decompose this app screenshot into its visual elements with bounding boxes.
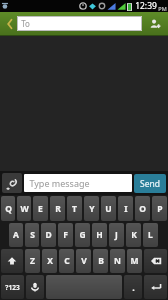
button[interactable]: D xyxy=(41,223,56,247)
button[interactable]: Y xyxy=(84,196,99,221)
button[interactable]: Z xyxy=(25,249,40,273)
button[interactable]: Q xyxy=(1,196,15,221)
button[interactable]: To xyxy=(17,16,142,31)
button[interactable]: S xyxy=(25,223,39,247)
button[interactable]: L xyxy=(143,223,158,247)
button[interactable]: Add recipient xyxy=(145,13,165,34)
button[interactable]: C xyxy=(59,249,74,273)
button[interactable]: X xyxy=(42,249,57,273)
staticText: I xyxy=(124,203,128,215)
button[interactable]: G xyxy=(75,223,90,247)
button[interactable]: M xyxy=(127,249,142,273)
staticText: F xyxy=(63,229,68,241)
button[interactable]: Voice input xyxy=(26,275,44,299)
staticText: W xyxy=(20,203,29,215)
button[interactable]: . xyxy=(124,275,142,299)
staticText: P xyxy=(157,203,163,215)
staticText: S xyxy=(30,229,35,241)
staticText: E xyxy=(38,203,43,215)
staticText: Type message xyxy=(29,177,90,189)
staticText: G xyxy=(79,229,86,241)
button[interactable]: W xyxy=(17,196,31,221)
staticText: O xyxy=(139,203,146,215)
button[interactable]: Back xyxy=(3,13,17,34)
staticText: Z xyxy=(30,255,35,267)
staticText: K xyxy=(131,229,137,241)
button[interactable]: B xyxy=(93,249,108,273)
button[interactable]: Send xyxy=(134,174,166,193)
button[interactable]: T xyxy=(67,196,82,221)
staticText: X xyxy=(47,255,53,267)
staticText: To xyxy=(21,18,30,29)
staticText: R xyxy=(55,203,61,215)
staticText: Q xyxy=(5,203,12,215)
staticText: PM xyxy=(158,5,167,12)
button[interactable]: P xyxy=(152,196,167,221)
staticText: ?123 xyxy=(5,283,20,292)
staticText: M xyxy=(130,255,139,267)
staticText: Send xyxy=(140,178,160,190)
staticText: Y xyxy=(89,203,95,215)
button[interactable]: Attach xyxy=(2,173,22,193)
staticText: N xyxy=(114,255,121,267)
button[interactable]: Type message xyxy=(24,174,132,192)
button[interactable]: Enter xyxy=(144,275,167,299)
button[interactable]: E xyxy=(33,196,48,221)
button[interactable]: A xyxy=(9,223,23,247)
staticText: V xyxy=(81,255,87,267)
staticText: C xyxy=(64,255,70,267)
staticText: T xyxy=(72,203,77,215)
button[interactable]: R xyxy=(50,196,65,221)
button[interactable]: N xyxy=(110,249,125,273)
staticText: . xyxy=(132,281,135,293)
button[interactable]: Backspace xyxy=(144,249,167,273)
staticText: A xyxy=(13,229,19,241)
staticText: J xyxy=(115,229,118,241)
button[interactable]: U xyxy=(101,196,116,221)
button[interactable]: V xyxy=(76,249,91,273)
button[interactable]: I xyxy=(118,196,133,221)
staticText: L xyxy=(148,229,153,241)
button[interactable]: F xyxy=(58,223,73,247)
button[interactable]: K xyxy=(126,223,141,247)
button[interactable]: Shift xyxy=(1,249,23,273)
button[interactable]: J xyxy=(109,223,124,247)
button[interactable]: O xyxy=(135,196,150,221)
staticText: 12:39 xyxy=(135,0,157,12)
staticText: U xyxy=(105,203,112,215)
staticText: D xyxy=(45,229,52,241)
button[interactable]: H xyxy=(92,223,107,247)
staticText: B xyxy=(98,255,104,267)
button[interactable] xyxy=(46,275,122,299)
staticText: H xyxy=(96,229,103,241)
button[interactable]: ?123 xyxy=(1,275,24,299)
